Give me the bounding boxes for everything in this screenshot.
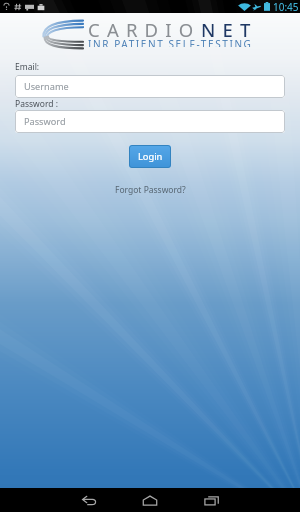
button[interactable]: Forgot Password? [109,181,192,199]
staticText: Forgot Password? [115,184,186,196]
staticText: INR PATIENT SELF-TESTING [88,37,253,47]
staticText: Password [24,115,66,128]
staticText: 10:45 [273,0,299,13]
button[interactable]: Login [129,145,171,168]
staticText: Username [24,80,69,93]
staticText: NET [201,17,258,42]
button[interactable]: Password [15,110,285,133]
staticText: Login [138,150,163,163]
button[interactable]: Recent apps [185,488,237,512]
staticText: Email: [15,61,40,73]
button[interactable]: Username [15,75,285,98]
button[interactable]: Back [63,488,115,512]
staticText: Password : [15,98,58,108]
staticText: CARDIO [88,17,201,42]
button[interactable]: Home [124,488,176,512]
